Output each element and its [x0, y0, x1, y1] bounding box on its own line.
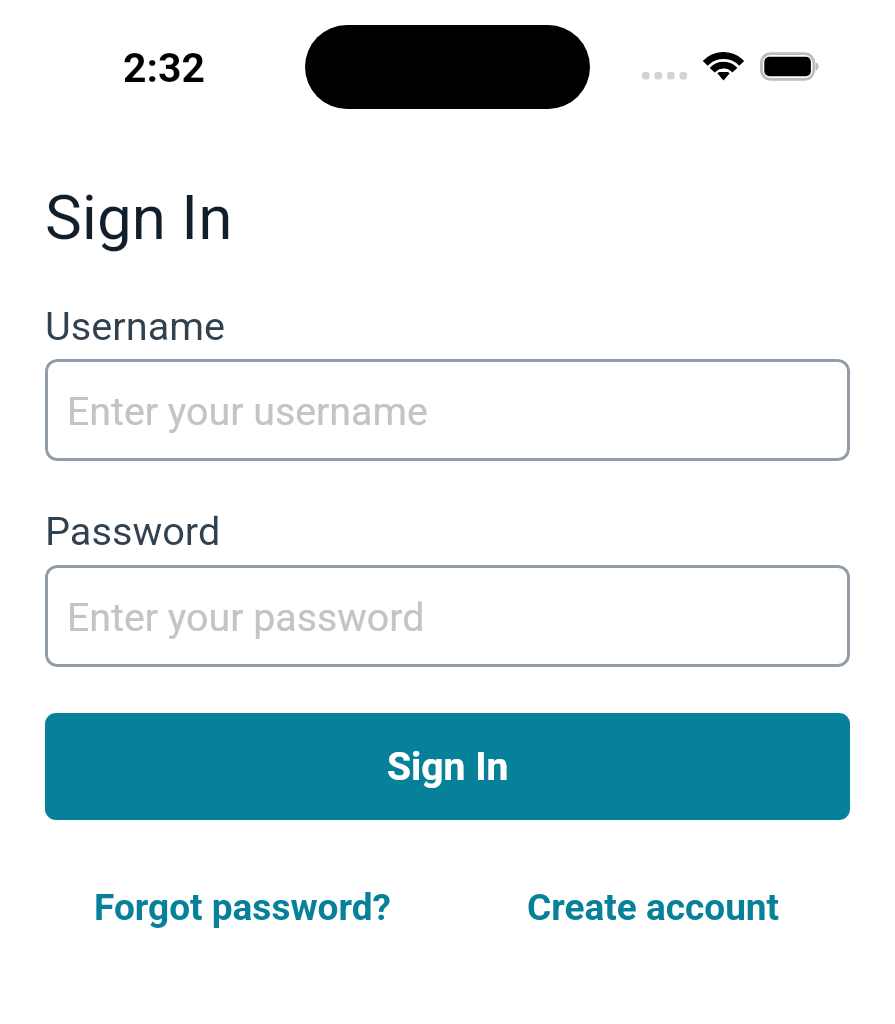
staticText: Password	[45, 508, 221, 555]
button[interactable]: Create account	[452, 886, 855, 929]
staticText: Sign In	[45, 181, 233, 254]
staticText: Enter your username	[67, 389, 428, 435]
button[interactable]: Forgot password?	[41, 886, 443, 929]
staticText: 2:32	[123, 44, 206, 92]
other: Cellular signal	[642, 52, 686, 81]
other: Wi-Fi	[704, 52, 743, 81]
staticText: Username	[45, 303, 226, 350]
button[interactable]: Enter your username	[45, 359, 850, 461]
button[interactable]: Enter your password	[45, 565, 850, 667]
button[interactable]: Sign In	[45, 713, 850, 820]
staticText: Create account	[527, 886, 780, 929]
staticText: Enter your password	[67, 595, 425, 641]
other: Battery	[760, 52, 821, 81]
staticText: Sign In	[387, 744, 509, 790]
staticText: Forgot password?	[94, 886, 391, 929]
